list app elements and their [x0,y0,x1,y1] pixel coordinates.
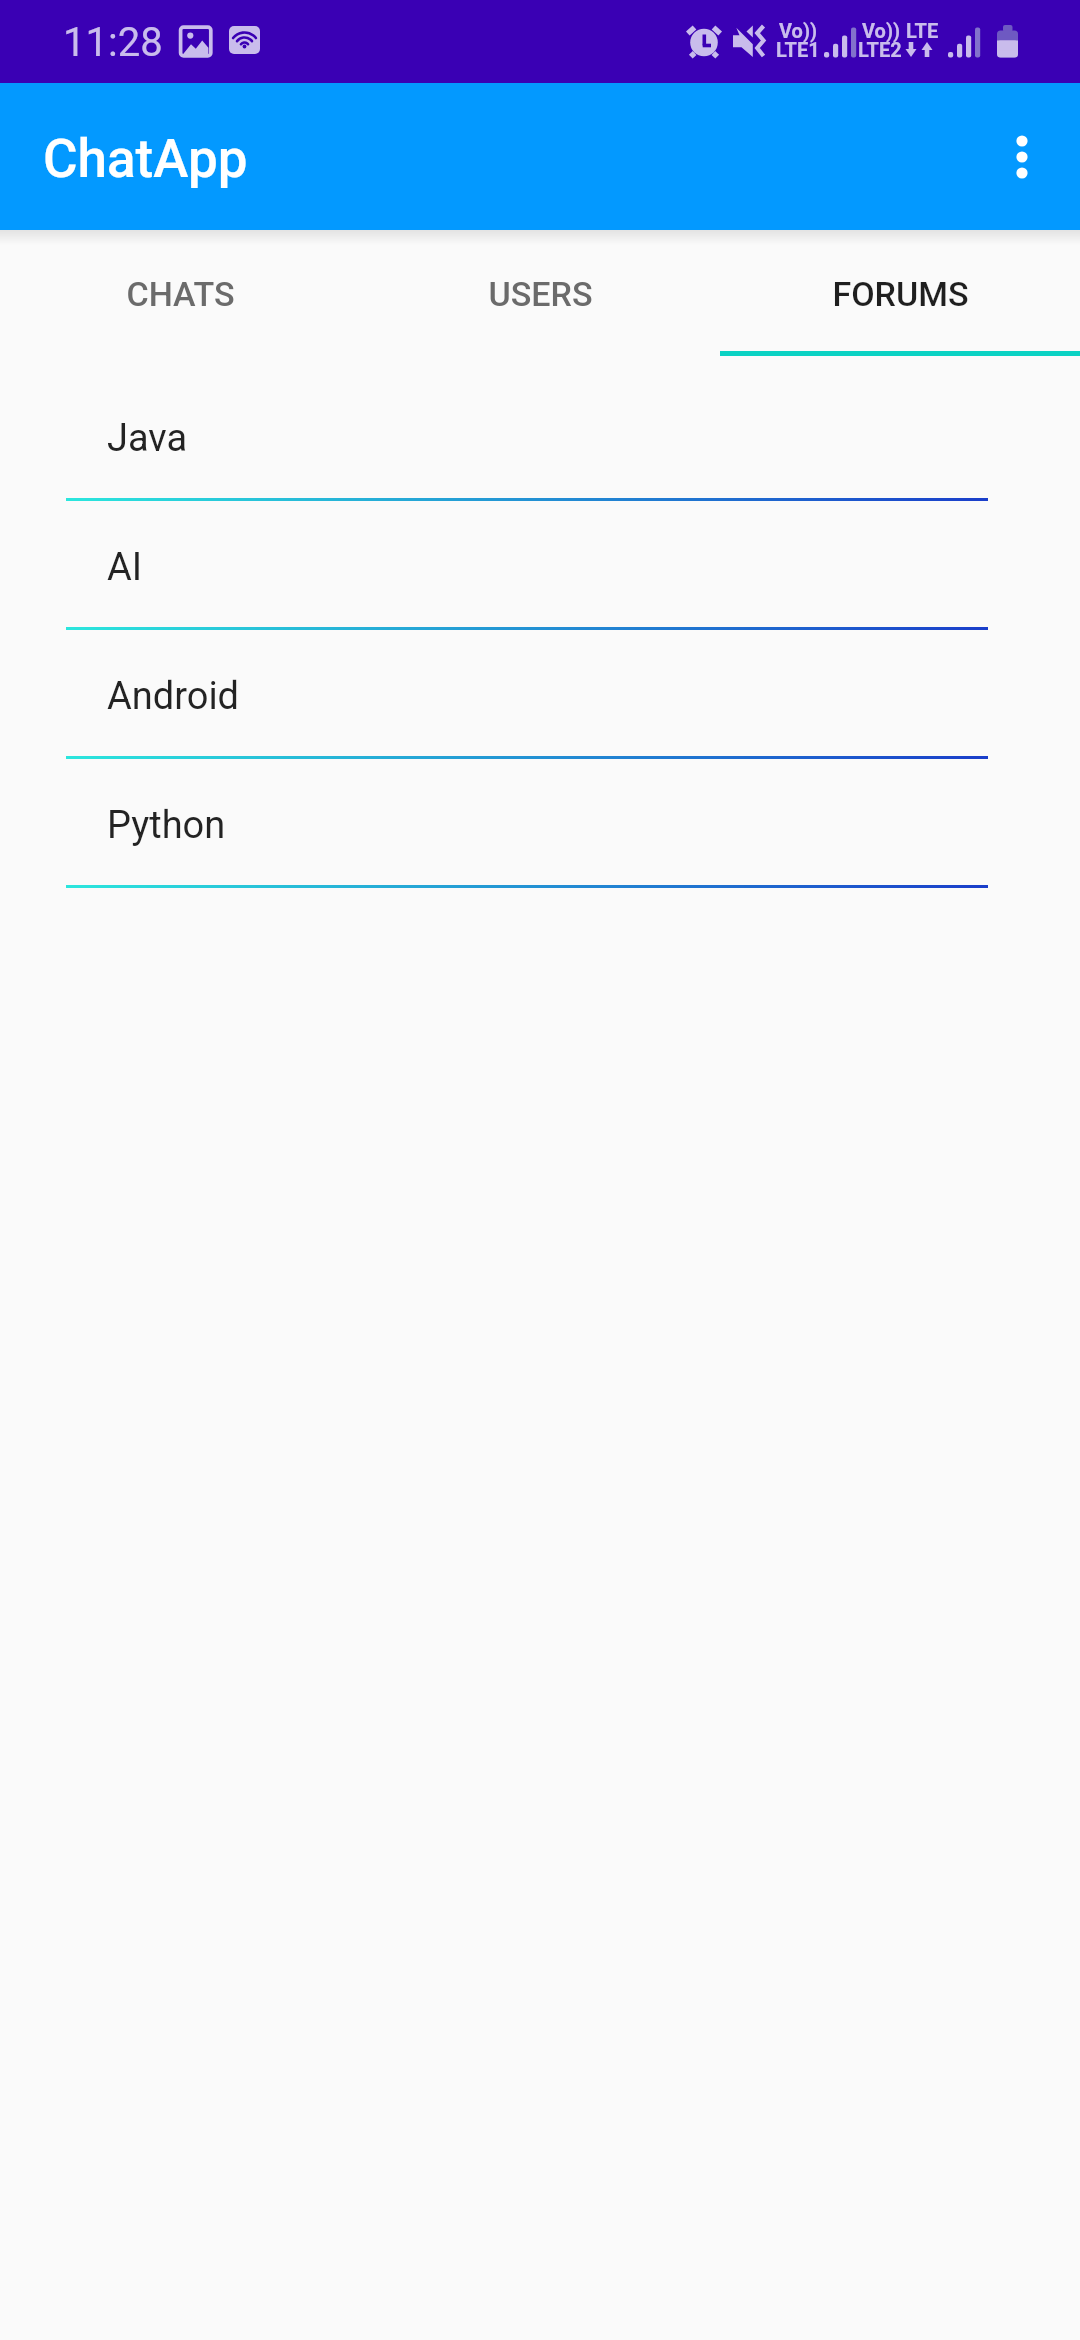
button[interactable]: Android [0,631,1080,760]
staticText: FORUMS [832,274,969,314]
staticText: LTE [906,19,939,42]
button[interactable]: USERS [360,230,720,360]
staticText: AI [107,545,143,590]
staticText: LTE1 [776,38,820,61]
button[interactable]: More options [964,83,1080,230]
button[interactable]: CHATS [0,230,360,360]
button[interactable]: FORUMS [720,230,1080,360]
button[interactable]: Java [0,373,1080,502]
button[interactable]: AI [0,502,1080,631]
button[interactable]: Python [0,760,1080,889]
staticText: Android [107,674,240,719]
staticText: USERS [488,274,593,314]
staticText: Vo)) [862,19,900,42]
staticText: Vo)) [779,19,817,42]
staticText: 11:28 [63,19,163,66]
staticText: Python [107,803,226,848]
staticText: CHATS [126,274,235,314]
staticText: LTE2 [858,38,902,61]
staticText: Java [107,416,188,461]
staticText: ChatApp [43,128,248,190]
